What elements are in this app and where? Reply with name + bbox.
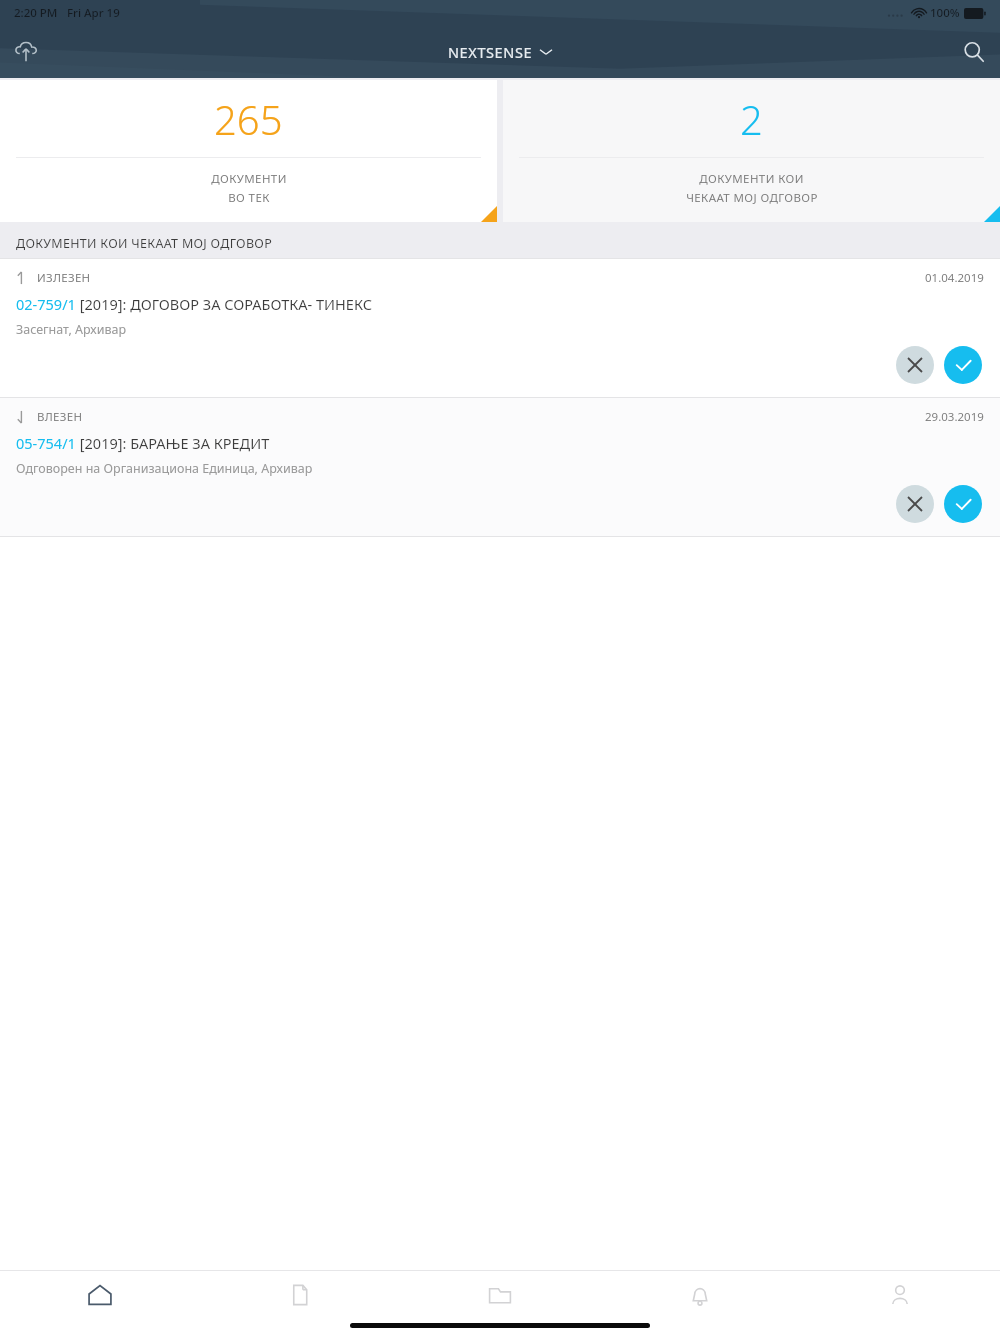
button[interactable]: Folders bbox=[400, 1271, 600, 1319]
button[interactable]: Reject bbox=[896, 346, 934, 384]
button[interactable]: Home bbox=[0, 1271, 200, 1319]
button[interactable]: Notifications bbox=[600, 1271, 800, 1319]
staticText: Fri Apr 19 bbox=[67, 5, 120, 21]
button[interactable]: Profile bbox=[800, 1271, 1000, 1319]
staticText: [2019]: ДОГОВОР ЗА СОРАБОТКА- ТИНЕКС bbox=[76, 294, 372, 314]
staticText: 2 bbox=[740, 92, 763, 146]
staticText: 29.03.2019 bbox=[925, 409, 984, 425]
staticText: 2:20 PM bbox=[14, 5, 58, 21]
staticText: 265 bbox=[214, 92, 283, 146]
staticText: Засегнат, Архивар bbox=[16, 321, 127, 338]
staticText: 01.04.2019 bbox=[925, 270, 984, 286]
staticText: ДОКУМЕНТИ КОИ ЧЕКААТ МОЈ ОДГОВОР bbox=[16, 235, 273, 252]
button[interactable]: Approve bbox=[944, 485, 982, 523]
button[interactable]: Documents bbox=[200, 1271, 400, 1319]
button[interactable]: Approve bbox=[944, 346, 982, 384]
staticText: 02-759/1 bbox=[16, 294, 76, 314]
staticText: ЧЕКААТ МОЈ ОДГОВОР bbox=[686, 190, 818, 206]
staticText: ИЗЛЕЗЕН bbox=[37, 270, 91, 286]
button[interactable]: ВЛЕЗЕН bbox=[0, 397, 1000, 536]
button[interactable]: 2 bbox=[503, 80, 1000, 222]
button[interactable]: 265 bbox=[0, 80, 497, 222]
button[interactable]: ИЗЛЕЗЕН bbox=[0, 258, 1000, 397]
button[interactable]: Search bbox=[948, 26, 1000, 78]
staticText: ДОКУМЕНТИ bbox=[211, 171, 287, 187]
staticText: NEXTSENSE bbox=[448, 42, 533, 62]
button[interactable]: Reject bbox=[896, 485, 934, 523]
staticText: ВО ТЕК bbox=[228, 190, 270, 206]
staticText: [2019]: БАРАЊЕ ЗА КРЕДИТ bbox=[76, 433, 270, 453]
button[interactable]: NEXTSENSE bbox=[448, 42, 552, 62]
staticText: 100% bbox=[930, 5, 960, 21]
staticText: ДОКУМЕНТИ КОИ bbox=[699, 171, 804, 187]
staticText: Одговорен на Организациона Единица, Архи… bbox=[16, 460, 313, 477]
staticText: 05-754/1 bbox=[16, 433, 76, 453]
button[interactable]: Upload bbox=[0, 26, 52, 78]
staticText: ВЛЕЗЕН bbox=[37, 409, 83, 425]
